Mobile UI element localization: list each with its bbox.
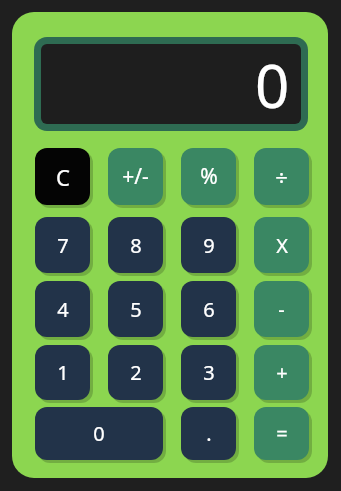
staticText: 7 xyxy=(57,232,69,259)
staticText: ÷ xyxy=(275,162,288,192)
staticText: 2 xyxy=(130,359,142,386)
button[interactable]: 3 xyxy=(181,345,236,400)
staticText: 8 xyxy=(130,232,142,259)
staticText: . xyxy=(206,420,212,447)
button[interactable]: 7 xyxy=(35,217,90,273)
button[interactable]: 2 xyxy=(108,345,163,400)
staticText: 4 xyxy=(57,296,69,323)
button[interactable]: 8 xyxy=(108,217,163,273)
staticText: 5 xyxy=(130,296,142,323)
button[interactable]: 0 xyxy=(35,407,163,460)
button[interactable]: Plus xyxy=(254,345,309,400)
button[interactable]: 6 xyxy=(181,281,236,337)
staticText: - xyxy=(278,296,285,323)
button[interactable]: Plus minus sign toggle xyxy=(108,148,163,205)
button[interactable]: Divide xyxy=(254,148,309,205)
staticText: 0 xyxy=(255,44,290,124)
staticText: X xyxy=(276,232,288,259)
button[interactable]: Multiply xyxy=(254,217,309,273)
button[interactable]: 5 xyxy=(108,281,163,337)
staticText: 0 xyxy=(93,420,105,447)
staticText: = xyxy=(276,420,288,447)
staticText: + xyxy=(276,359,288,386)
button[interactable]: Minus xyxy=(254,281,309,337)
staticText: 6 xyxy=(203,296,215,323)
staticText: 3 xyxy=(203,359,215,386)
staticText: 1 xyxy=(57,359,69,386)
button[interactable]: 4 xyxy=(35,281,90,337)
button[interactable]: Percent xyxy=(181,148,236,205)
button[interactable]: Equals xyxy=(254,407,309,460)
button[interactable]: Decimal point xyxy=(181,407,236,460)
staticText: +/- xyxy=(122,162,149,191)
staticText: % xyxy=(200,162,218,191)
staticText: 9 xyxy=(203,232,215,259)
staticText: C xyxy=(56,162,70,192)
button[interactable]: 1 xyxy=(35,345,90,400)
button[interactable]: C xyxy=(35,148,90,205)
button[interactable]: 9 xyxy=(181,217,236,273)
